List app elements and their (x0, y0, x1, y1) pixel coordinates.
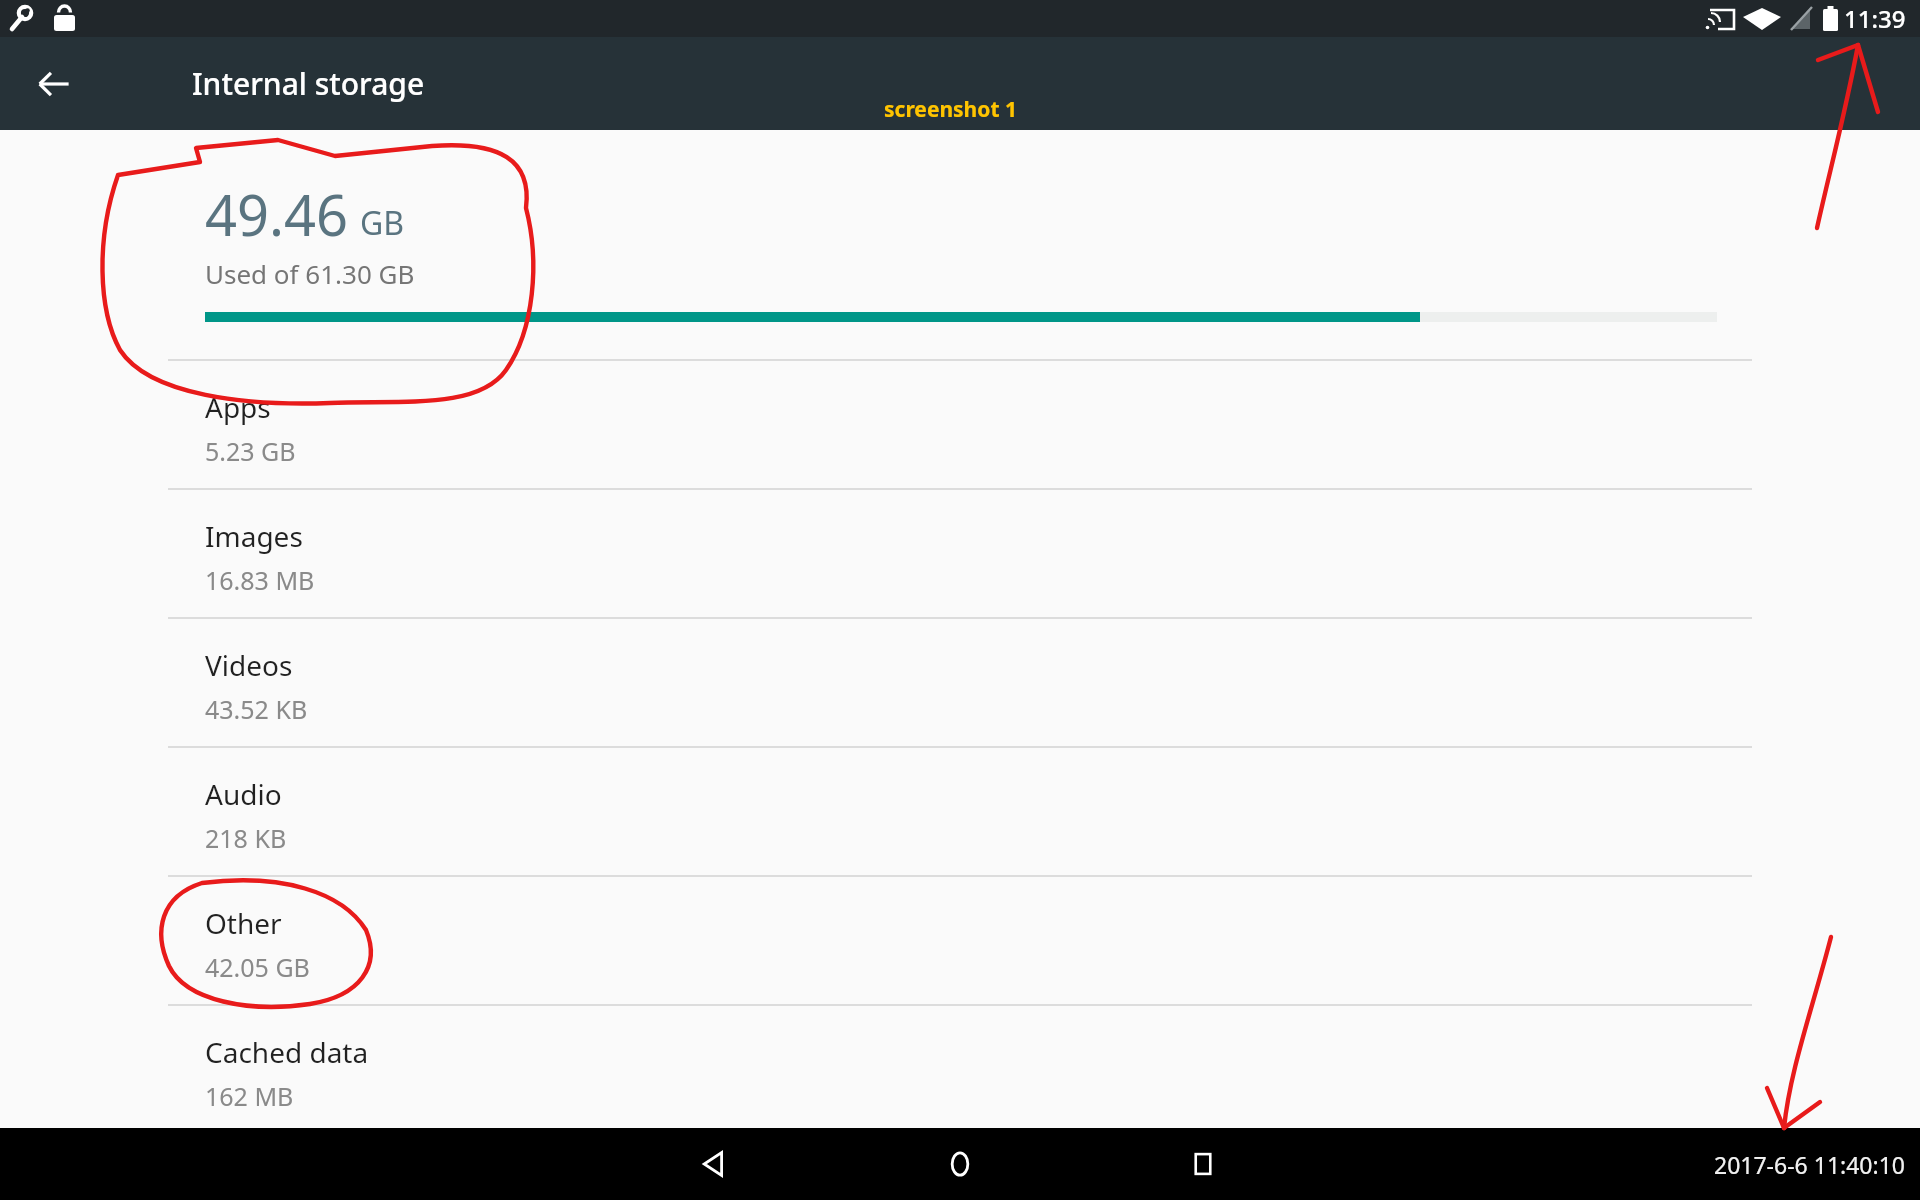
staticText: Internal storage (192, 63, 425, 104)
staticText: Used of 61.30 GB (205, 256, 415, 291)
staticText: 11:39 (1844, 2, 1906, 35)
button[interactable]: Cached data (0, 1006, 1920, 1135)
staticText: Images (205, 517, 303, 555)
staticText: Cached data (205, 1033, 369, 1071)
button[interactable]: Recent apps (1163, 1128, 1243, 1200)
button[interactable]: Back (20, 50, 88, 118)
button[interactable]: Images (0, 490, 1920, 619)
button[interactable]: Audio (0, 748, 1920, 877)
staticText: Videos (205, 646, 293, 684)
staticText: Other (205, 904, 282, 942)
staticText: screenshot 1 (884, 95, 1017, 124)
button[interactable]: Apps (0, 361, 1920, 490)
staticText: 49.46 (205, 176, 349, 252)
staticText: 218 KB (205, 821, 287, 855)
staticText: Apps (205, 388, 271, 426)
staticText: 162 MB (205, 1079, 294, 1113)
button[interactable]: Other (0, 877, 1920, 1006)
staticText: 5.23 GB (205, 434, 296, 468)
button[interactable]: Videos (0, 619, 1920, 748)
staticText: 16.83 MB (205, 563, 315, 597)
staticText: GB (360, 201, 405, 245)
staticText: Audio (205, 775, 282, 813)
staticText: 42.05 GB (205, 950, 310, 984)
staticText: 43.52 KB (205, 692, 308, 726)
button[interactable]: Home (920, 1128, 1000, 1200)
button[interactable]: Back (675, 1128, 755, 1200)
staticText: 2017-6-6 11:40:10 (1714, 1149, 1905, 1180)
